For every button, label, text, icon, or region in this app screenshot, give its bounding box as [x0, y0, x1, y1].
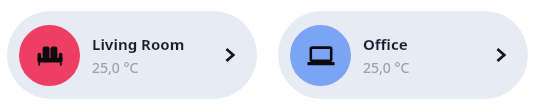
- button[interactable]: Open Office: [484, 38, 518, 72]
- staticText: Living Room: [92, 34, 185, 54]
- button[interactable]: Open Living Room: [213, 38, 247, 72]
- button[interactable]: Living Room: [7, 11, 257, 99]
- staticText: 25,0 °C: [92, 58, 139, 77]
- button[interactable]: Office: [278, 11, 528, 99]
- staticText: 25,0 °C: [363, 58, 410, 77]
- staticText: Office: [363, 34, 408, 54]
- other: Office: [290, 25, 351, 86]
- other: Living Room: [19, 25, 80, 86]
